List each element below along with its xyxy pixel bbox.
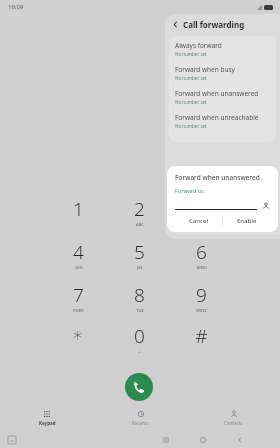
staticText: 2: [134, 196, 145, 222]
staticText: No number set: [175, 99, 207, 105]
staticText: Enable: [237, 217, 257, 225]
staticText: 9: [196, 282, 207, 308]
staticText: Forward to:: [175, 187, 205, 194]
staticText: 6: [196, 239, 207, 265]
button[interactable]: Enable: [223, 217, 270, 225]
staticText: Forward when unreachable: [175, 113, 259, 122]
button[interactable]: Recent apps: [160, 434, 172, 446]
staticText: 3: [196, 196, 207, 222]
staticText: 4: [73, 239, 84, 265]
staticText: 7: [73, 282, 84, 308]
staticText: Forward when unanswered: [175, 89, 259, 98]
button[interactable]: ∗: [54, 323, 102, 355]
staticText: Cancel: [189, 217, 209, 225]
staticText: Contacts: [224, 420, 243, 426]
staticText: PQRS: [73, 308, 84, 313]
button[interactable]: Always forward: [169, 41, 276, 65]
button[interactable]: Call: [125, 373, 153, 401]
staticText: Call forwarding: [183, 19, 245, 30]
button[interactable]: 5: [115, 239, 163, 271]
staticText: Keypad: [39, 420, 56, 426]
button[interactable]: Keypad: [0, 406, 94, 430]
staticText: 5: [134, 239, 145, 265]
button[interactable]: Choose contact: [262, 202, 270, 210]
button[interactable]: #: [177, 323, 225, 355]
button[interactable]: Recents: [94, 406, 187, 430]
staticText: MNO: [197, 265, 207, 270]
staticText: 1: [73, 196, 84, 222]
button[interactable]: Forward when unanswered: [169, 89, 276, 113]
button[interactable]: Forward when unreachable: [169, 113, 276, 137]
staticText: Forward when busy: [175, 65, 235, 74]
staticText: 8: [134, 282, 145, 308]
staticText: ∗: [72, 323, 84, 345]
staticText: Recents: [132, 420, 149, 426]
button[interactable]: 9: [177, 282, 225, 314]
staticText: WXYZ: [196, 308, 207, 313]
staticText: 10:09: [8, 3, 24, 11]
staticText: No number set: [175, 51, 207, 57]
button[interactable]: Back: [170, 19, 180, 29]
staticText: DEF: [198, 222, 206, 227]
staticText: ABC: [136, 222, 144, 227]
button[interactable]: 2: [115, 196, 163, 228]
button[interactable]: 8: [115, 282, 163, 314]
staticText: JKL: [137, 265, 143, 270]
button[interactable]: 6: [177, 239, 225, 271]
button[interactable]: Home: [197, 434, 209, 446]
staticText: No number set: [175, 75, 207, 81]
button[interactable]: 1: [54, 196, 102, 228]
button[interactable]: Back: [234, 434, 246, 446]
staticText: Forward when unanswered: [175, 173, 260, 182]
button[interactable]: Cancel: [175, 217, 222, 225]
staticText: Always forward: [175, 41, 222, 50]
staticText: +: [138, 349, 141, 354]
staticText: #: [195, 323, 208, 349]
button[interactable]: 3: [177, 196, 225, 228]
button[interactable]: 7: [54, 282, 102, 314]
button[interactable]: 4: [54, 239, 102, 271]
button[interactable]: 0: [115, 323, 163, 355]
staticText: 0: [134, 323, 145, 349]
staticText: TUV: [136, 308, 144, 313]
button[interactable]: Contacts: [187, 406, 280, 430]
button[interactable]: Keyboard: [8, 436, 16, 444]
staticText: No number set: [175, 123, 207, 129]
staticText: GHI: [75, 265, 83, 270]
button[interactable]: Forward when busy: [169, 65, 276, 89]
